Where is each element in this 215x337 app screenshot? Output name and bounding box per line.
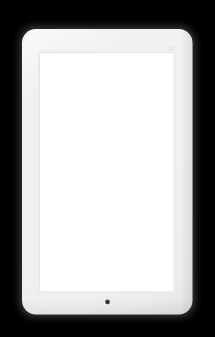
button[interactable]: Tablet device preview [0,0,215,337]
